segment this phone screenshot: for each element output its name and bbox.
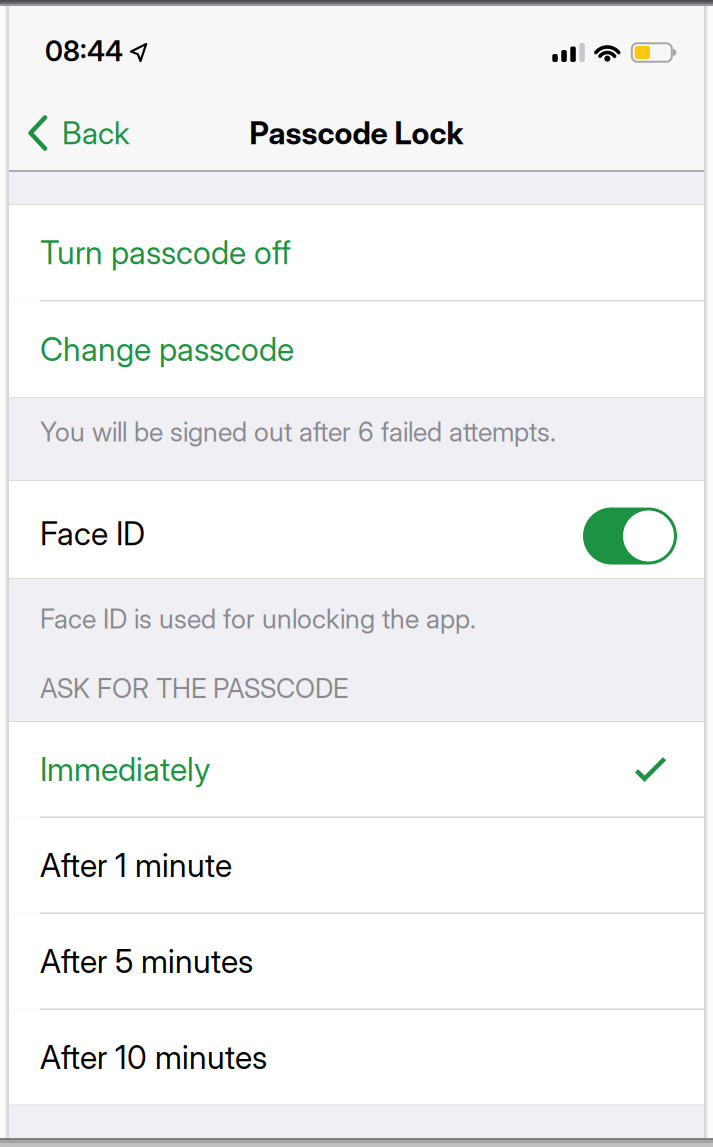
button[interactable]: Immediately: [9, 722, 704, 816]
staticText: Face ID is used for unlocking the app.: [40, 603, 476, 634]
button[interactable]: Change passcode: [9, 301, 704, 397]
button[interactable]: Face ID: [583, 507, 677, 564]
staticText: Turn passcode off: [40, 234, 291, 271]
staticText: Face ID: [40, 515, 145, 552]
button[interactable]: After 10 minutes: [9, 1010, 704, 1104]
staticText: After 10 minutes: [40, 1038, 267, 1076]
staticText: Passcode Lock: [249, 115, 463, 151]
button[interactable]: After 1 minute: [9, 818, 704, 912]
button[interactable]: Back: [9, 115, 130, 151]
button[interactable]: After 5 minutes: [9, 914, 704, 1008]
staticText: 08:44: [45, 34, 123, 67]
staticText: Change passcode: [40, 330, 294, 368]
staticText: You will be signed out after 6 failed at…: [40, 416, 556, 447]
staticText: ASK FOR THE PASSCODE: [40, 672, 348, 704]
button[interactable]: Turn passcode off: [9, 205, 704, 300]
staticText: After 1 minute: [40, 846, 232, 884]
staticText: Back: [62, 115, 130, 151]
staticText: After 5 minutes: [40, 942, 253, 980]
staticText: Immediately: [40, 750, 210, 788]
